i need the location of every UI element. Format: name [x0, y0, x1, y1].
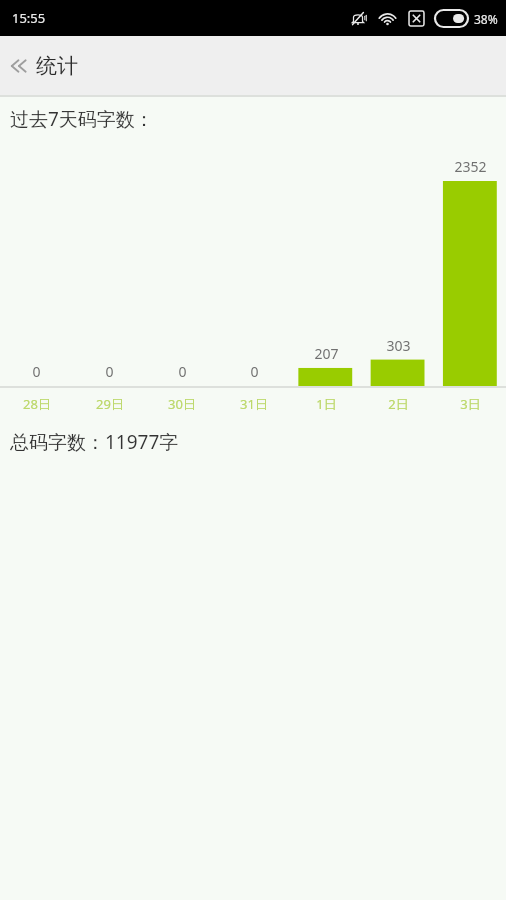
- staticText: 统计: [36, 53, 78, 79]
- staticText: 15:55: [12, 9, 46, 27]
- other: Back: [6, 54, 30, 78]
- staticText: 28日: [23, 395, 51, 413]
- staticText: 0: [250, 362, 259, 381]
- staticText: 0: [105, 362, 114, 381]
- staticText: 0: [178, 362, 187, 381]
- staticText: 0: [32, 362, 41, 381]
- button[interactable]: Back: [0, 36, 92, 95]
- staticText: 303: [386, 336, 411, 355]
- staticText: 过去7天码字数：: [10, 106, 154, 132]
- staticText: 1日: [316, 395, 337, 413]
- staticText: 30日: [168, 395, 196, 413]
- staticText: 总码字数：11977字: [10, 429, 179, 455]
- staticText: 2352: [454, 157, 487, 176]
- staticText: 3日: [460, 395, 481, 413]
- staticText: 207: [314, 344, 339, 363]
- staticText: 31日: [240, 395, 268, 413]
- staticText: 38%: [474, 11, 498, 27]
- staticText: 2日: [388, 395, 409, 413]
- staticText: 29日: [96, 395, 124, 413]
